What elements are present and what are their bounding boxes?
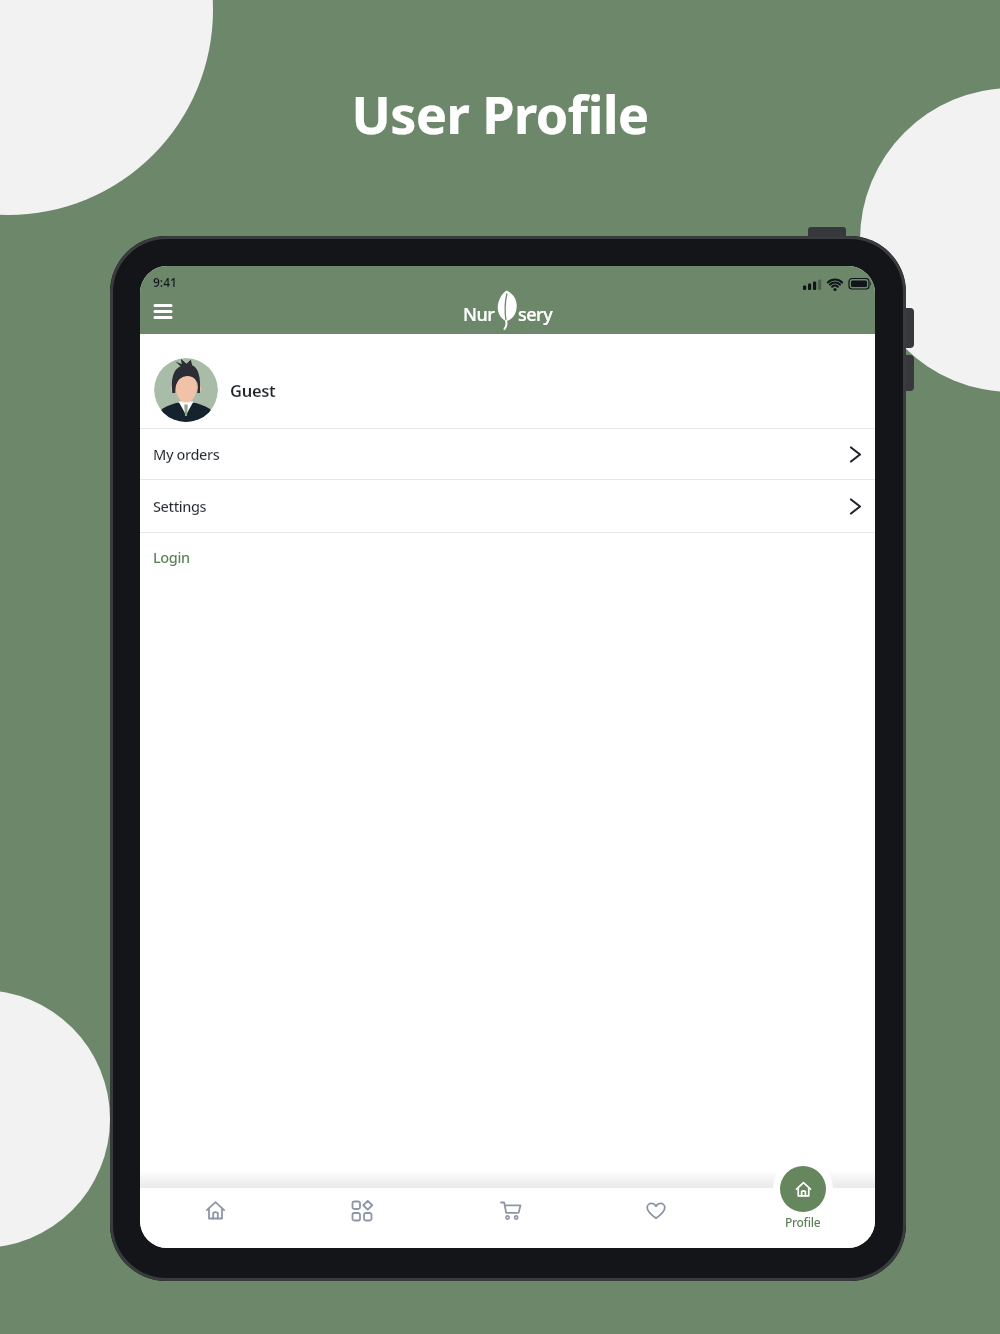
staticText: User Profile [0, 78, 1000, 149]
button[interactable] [486, 1186, 534, 1234]
button[interactable] [337, 1186, 385, 1234]
button[interactable] [154, 358, 218, 422]
button[interactable]: Login [140, 533, 875, 581]
button[interactable]: My orders [140, 429, 875, 479]
staticText: My orders [153, 444, 220, 464]
staticText: Login [153, 547, 190, 567]
button[interactable] [780, 1166, 826, 1212]
button[interactable] [631, 1186, 679, 1234]
button[interactable] [191, 1186, 239, 1234]
staticText: 9:41 [153, 274, 177, 290]
staticText: Guest [230, 379, 276, 401]
staticText: Profile [785, 1214, 821, 1230]
button[interactable] [148, 296, 178, 326]
staticText: Settings [153, 496, 207, 516]
button[interactable]: Settings [140, 480, 875, 532]
staticText: sery [518, 302, 553, 327]
staticText: Nur [463, 302, 495, 327]
